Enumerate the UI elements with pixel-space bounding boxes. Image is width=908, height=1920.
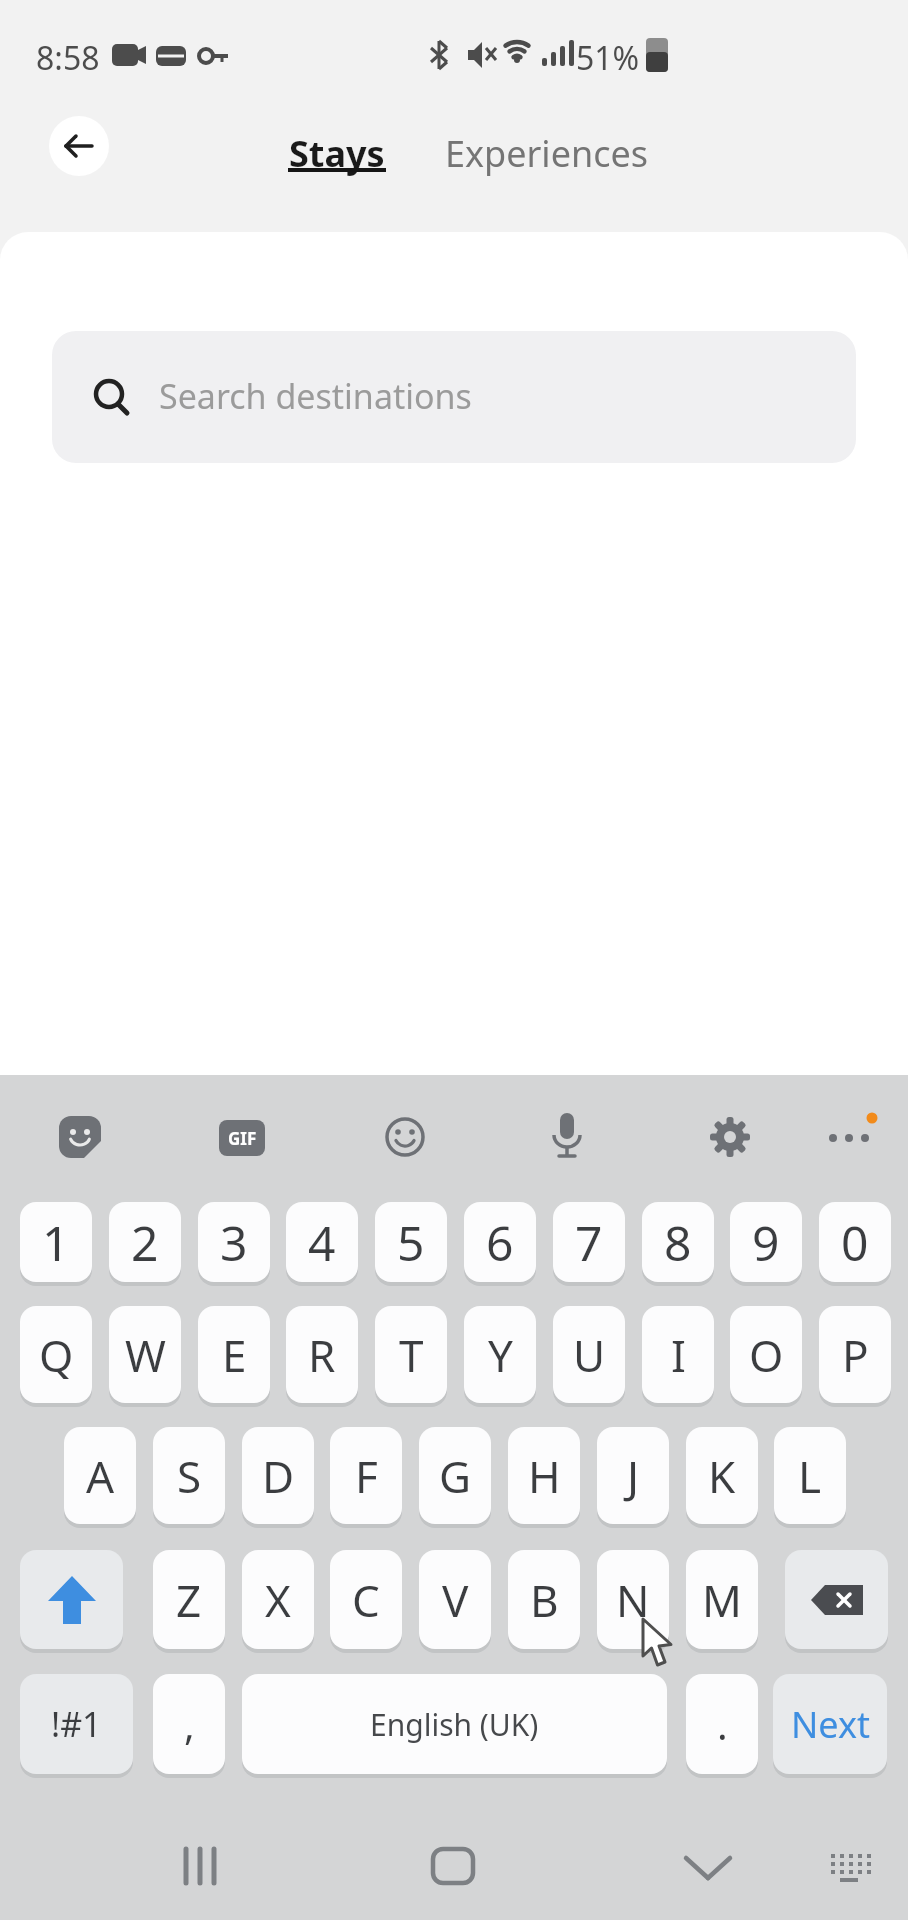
staticText: H xyxy=(528,1446,561,1506)
button[interactable]: V xyxy=(419,1550,491,1649)
staticText: T xyxy=(399,1325,424,1385)
staticText: U xyxy=(573,1325,606,1385)
staticText: J xyxy=(627,1446,640,1506)
staticText: G xyxy=(439,1446,472,1506)
button[interactable]: 0 xyxy=(819,1202,891,1282)
staticText: English (UK) xyxy=(370,1704,539,1745)
button[interactable]: English (UK) xyxy=(242,1674,667,1774)
button[interactable]: S xyxy=(153,1427,225,1524)
button[interactable]: Experiences xyxy=(430,120,664,186)
staticText: N xyxy=(616,1570,650,1630)
button[interactable]: Y xyxy=(464,1306,536,1403)
button[interactable]: X xyxy=(242,1550,314,1649)
button[interactable]: E xyxy=(198,1306,270,1403)
button[interactable]: 8 xyxy=(642,1202,714,1282)
button[interactable] xyxy=(20,1550,123,1649)
button[interactable] xyxy=(785,1550,888,1649)
button[interactable]: C xyxy=(330,1550,402,1649)
button[interactable]: P xyxy=(819,1306,891,1403)
button[interactable] xyxy=(170,1836,230,1896)
button[interactable] xyxy=(52,331,856,463)
staticText: F xyxy=(355,1446,378,1506)
button[interactable]: O xyxy=(730,1306,802,1403)
button[interactable]: J xyxy=(597,1427,669,1524)
button[interactable] xyxy=(383,1115,427,1159)
button[interactable]: GIF xyxy=(219,1120,265,1156)
staticText: 51% xyxy=(576,36,640,76)
button[interactable]: 6 xyxy=(464,1202,536,1282)
staticText: 3 xyxy=(220,1210,248,1275)
staticText: Next xyxy=(791,1700,870,1749)
staticText: , xyxy=(184,1697,195,1751)
button[interactable]: M xyxy=(686,1550,758,1649)
staticText: M xyxy=(702,1570,742,1630)
button[interactable] xyxy=(545,1111,589,1163)
button[interactable]: 5 xyxy=(375,1202,447,1282)
button[interactable] xyxy=(708,1115,752,1159)
button[interactable]: 2 xyxy=(109,1202,181,1282)
staticText: A xyxy=(86,1446,115,1506)
button[interactable]: 4 xyxy=(286,1202,358,1282)
staticText: S xyxy=(177,1446,202,1506)
staticText: 1 xyxy=(42,1210,70,1275)
staticText: W xyxy=(125,1325,166,1385)
staticText: !#1 xyxy=(51,1701,102,1747)
staticText: X xyxy=(265,1570,291,1630)
button[interactable]: W xyxy=(109,1306,181,1403)
button[interactable] xyxy=(49,116,109,176)
button[interactable]: H xyxy=(508,1427,580,1524)
button[interactable] xyxy=(678,1836,738,1896)
button[interactable] xyxy=(56,1113,104,1161)
button[interactable]: A xyxy=(64,1427,136,1524)
button[interactable]: K xyxy=(686,1427,758,1524)
staticText: L xyxy=(798,1446,822,1506)
staticText: 2 xyxy=(131,1210,159,1275)
button[interactable]: U xyxy=(553,1306,625,1403)
staticText: . xyxy=(717,1697,728,1751)
button[interactable]: Next xyxy=(773,1674,887,1774)
staticText: C xyxy=(352,1570,380,1630)
staticText: 8 xyxy=(664,1210,692,1275)
button[interactable] xyxy=(820,1105,884,1169)
staticText: 8:58 xyxy=(36,36,100,76)
button[interactable]: !#1 xyxy=(20,1674,133,1774)
staticText: V xyxy=(442,1570,469,1630)
staticText: Y xyxy=(488,1325,513,1385)
button[interactable]: D xyxy=(242,1427,314,1524)
staticText: Search destinations xyxy=(159,373,472,419)
button[interactable]: R xyxy=(286,1306,358,1403)
staticText: I xyxy=(671,1325,686,1385)
button[interactable]: I xyxy=(642,1306,714,1403)
button[interactable]: 1 xyxy=(20,1202,92,1282)
button[interactable] xyxy=(819,1836,879,1896)
staticText: 7 xyxy=(575,1210,603,1275)
button[interactable]: Z xyxy=(153,1550,225,1649)
button[interactable]: L xyxy=(774,1427,846,1524)
button[interactable]: 7 xyxy=(553,1202,625,1282)
staticText: 0 xyxy=(841,1210,869,1275)
button[interactable]: B xyxy=(508,1550,580,1649)
button[interactable]: Q xyxy=(20,1306,92,1403)
button[interactable]: 9 xyxy=(730,1202,802,1282)
staticText: P xyxy=(842,1325,869,1385)
button[interactable]: N xyxy=(597,1550,669,1649)
button[interactable]: . xyxy=(686,1674,758,1774)
staticText: R xyxy=(308,1325,336,1385)
button[interactable]: 3 xyxy=(198,1202,270,1282)
staticText: 5 xyxy=(397,1210,425,1275)
staticText: O xyxy=(749,1325,784,1385)
button[interactable]: G xyxy=(419,1427,491,1524)
button[interactable]: Stays xyxy=(270,120,404,186)
button[interactable]: T xyxy=(375,1306,447,1403)
staticText: 4 xyxy=(308,1210,336,1275)
staticText: Stays xyxy=(289,129,385,178)
staticText: Q xyxy=(39,1325,74,1385)
staticText: 9 xyxy=(752,1210,780,1275)
staticText: K xyxy=(708,1446,736,1506)
button[interactable]: F xyxy=(330,1427,402,1524)
staticText: E xyxy=(222,1325,247,1385)
staticText: Z xyxy=(176,1570,202,1630)
button[interactable] xyxy=(423,1836,483,1896)
button[interactable]: , xyxy=(153,1674,225,1774)
staticText: 6 xyxy=(486,1210,514,1275)
